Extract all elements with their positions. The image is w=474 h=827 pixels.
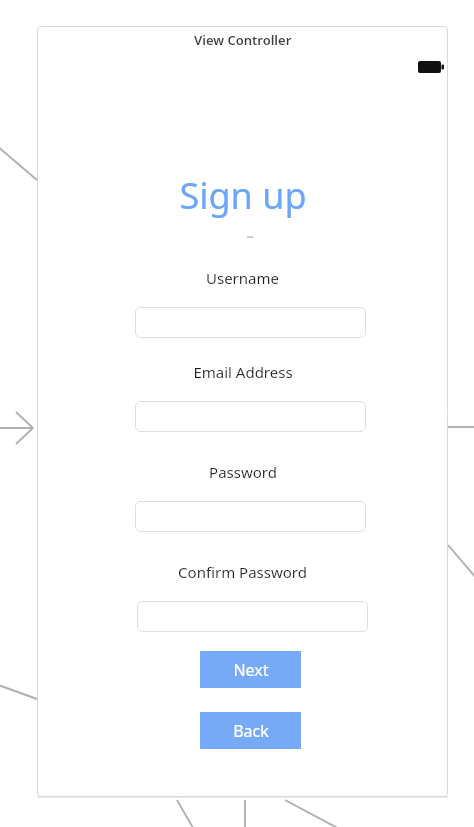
staticText: Email Address: [193, 362, 293, 382]
button[interactable]: Username: [135, 307, 366, 338]
button[interactable]: Email Address: [135, 401, 366, 432]
button[interactable]: Password: [135, 501, 366, 532]
staticText: Sign up: [179, 171, 307, 220]
staticText: View Controller: [194, 31, 292, 49]
other: Battery: [418, 61, 444, 73]
staticText: Username: [206, 268, 279, 288]
staticText: Confirm Password: [178, 562, 307, 582]
staticText: Next: [233, 659, 269, 681]
staticText: Back: [233, 720, 269, 742]
staticText: Password: [209, 462, 277, 482]
button[interactable]: Confirm Password: [137, 601, 368, 632]
button[interactable]: Next: [200, 651, 301, 688]
button[interactable]: Back: [200, 712, 301, 749]
